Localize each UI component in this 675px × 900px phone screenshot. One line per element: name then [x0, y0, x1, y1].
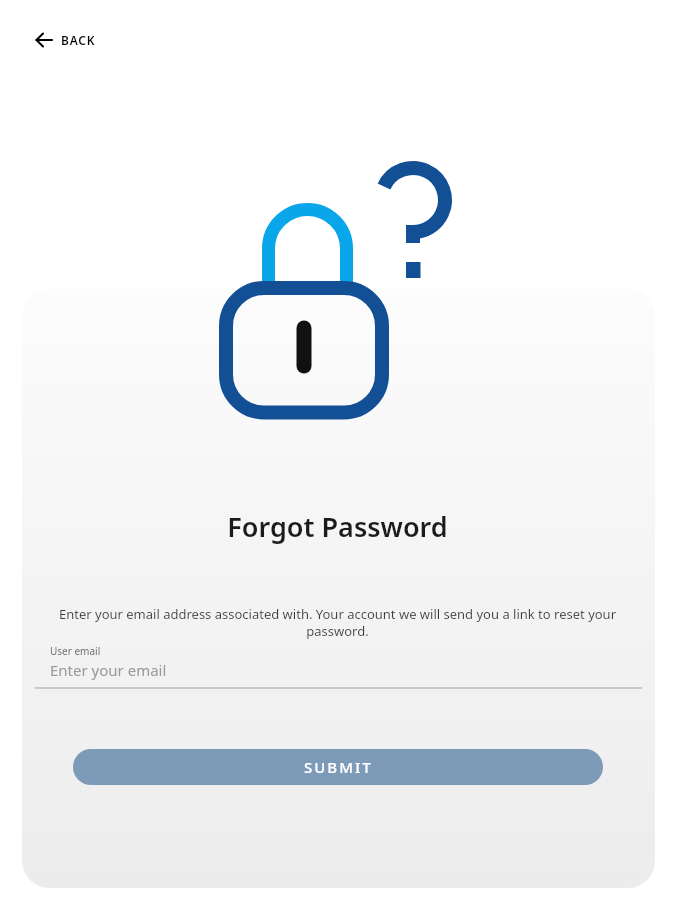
staticText: BACK — [61, 32, 96, 48]
button[interactable]: BACK — [30, 26, 102, 54]
staticText: User email — [50, 644, 101, 658]
button[interactable]: SUBMIT — [73, 749, 603, 785]
staticText: SUBMIT — [304, 757, 373, 777]
staticText: Enter your email address associated with… — [0, 605, 675, 640]
staticText: Enter your email — [50, 660, 167, 680]
staticText: Forgot Password — [0, 508, 675, 545]
